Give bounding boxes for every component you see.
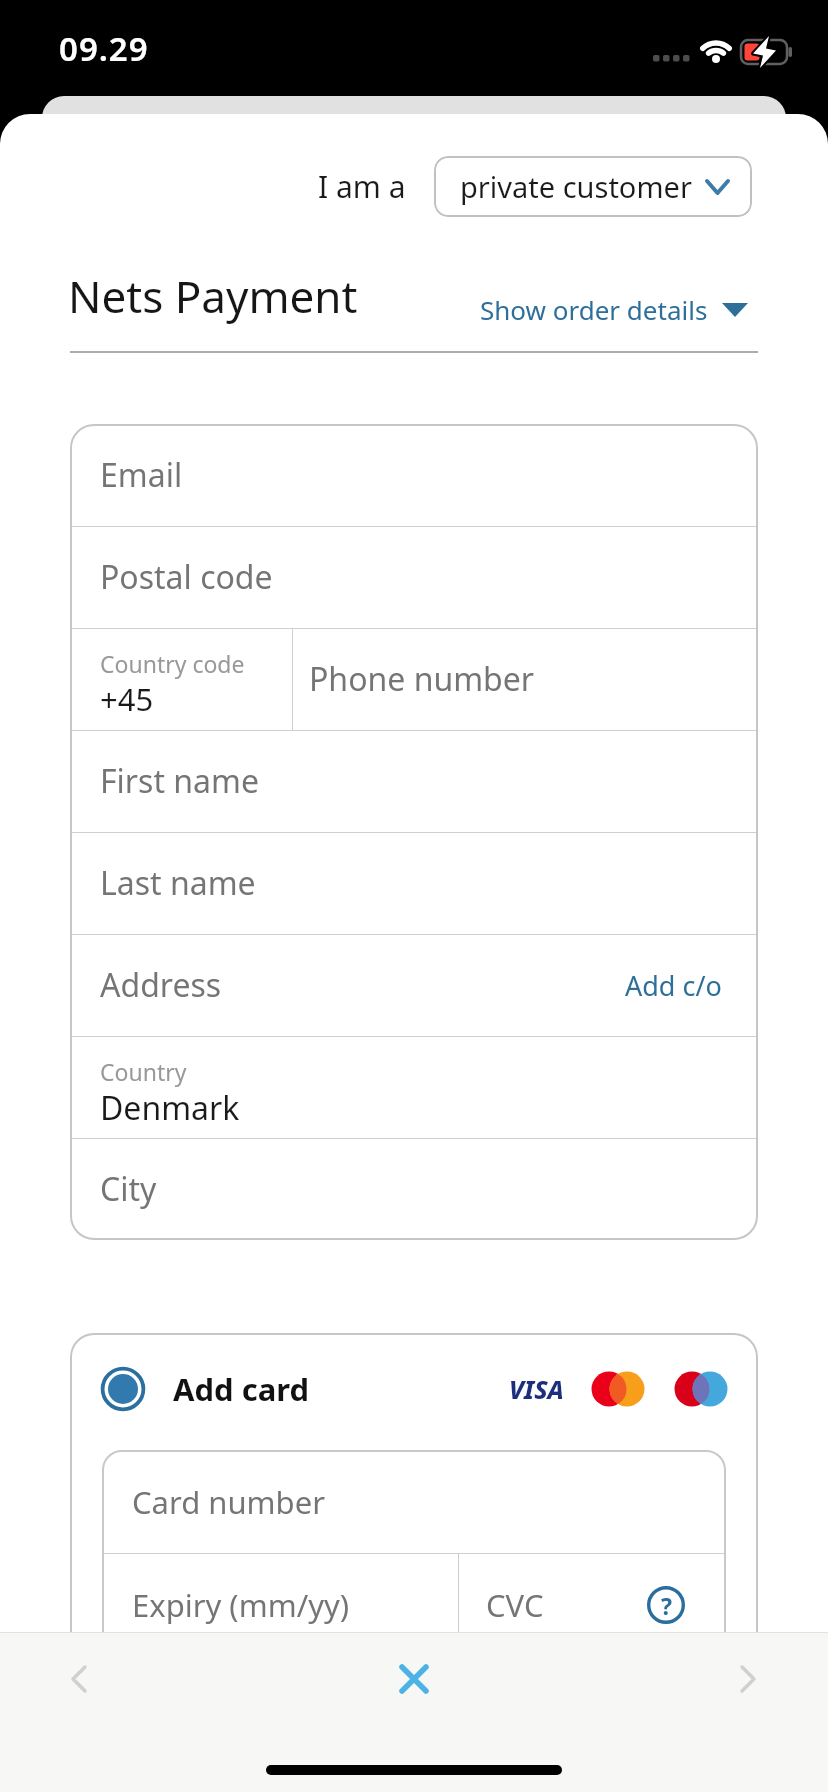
button[interactable]: Email: [70, 424, 758, 526]
staticText: Postal code: [100, 555, 273, 599]
button[interactable]: Expiry (mm/yy): [102, 1554, 458, 1656]
staticText: Denmark: [100, 1086, 240, 1130]
staticText: Card number: [132, 1481, 325, 1523]
button[interactable]: Show order details: [400, 280, 748, 338]
button[interactable]: ?: [646, 1585, 686, 1625]
staticText: VISA: [509, 1372, 564, 1406]
staticText: City: [100, 1167, 157, 1211]
button[interactable]: Phone number: [293, 628, 758, 730]
button[interactable]: Add c/o: [70, 934, 722, 1036]
button[interactable]: [100, 1366, 146, 1412]
button[interactable]: Country: [70, 1036, 758, 1138]
staticText: Show order details: [480, 292, 708, 327]
staticText: 09.29: [59, 26, 149, 62]
staticText: CVC: [486, 1584, 544, 1626]
button[interactable]: Address: [70, 934, 758, 1036]
button[interactable]: [724, 1655, 772, 1703]
staticText: First name: [100, 759, 259, 803]
staticText: Country code: [100, 648, 245, 679]
staticText: +45: [100, 678, 154, 720]
staticText: Email: [100, 453, 183, 497]
staticText: Add c/o: [625, 967, 722, 1004]
button[interactable]: City: [70, 1138, 758, 1240]
button[interactable]: Last name: [70, 832, 758, 934]
staticText: Last name: [100, 861, 256, 905]
button[interactable]: Card number: [102, 1450, 726, 1553]
button[interactable]: CVC: [459, 1554, 726, 1656]
button[interactable]: private customer: [434, 156, 752, 217]
staticText: ?: [661, 1590, 672, 1621]
staticText: Expiry (mm/yy): [132, 1584, 350, 1626]
button[interactable]: Postal code: [70, 526, 758, 628]
button[interactable]: Country code: [70, 628, 292, 730]
button[interactable]: [390, 1655, 438, 1703]
button[interactable]: [55, 1655, 103, 1703]
staticText: private customer: [460, 167, 692, 206]
button[interactable]: First name: [70, 730, 758, 832]
staticText: Nets Payment: [68, 266, 358, 326]
staticText: Country: [100, 1056, 187, 1087]
staticText: I am a: [318, 166, 406, 207]
staticText: Address: [100, 963, 222, 1007]
staticText: Phone number: [309, 657, 535, 701]
staticText: Add card: [173, 1368, 310, 1410]
